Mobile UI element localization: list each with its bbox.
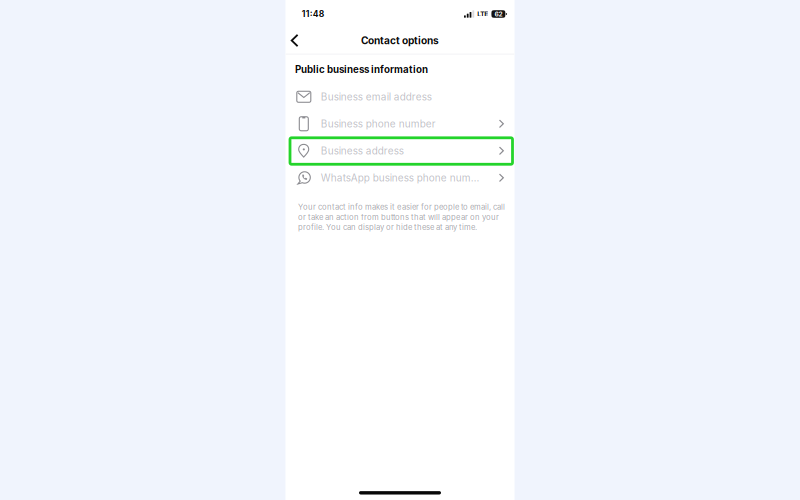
staticText: Public business information xyxy=(295,63,428,75)
staticText: 11:48 xyxy=(302,9,325,19)
staticText: 62 xyxy=(494,10,502,18)
button[interactable]: Business phone number xyxy=(285,110,514,137)
staticText: Business email address xyxy=(321,91,432,103)
button[interactable]: WhatsApp business phone num… xyxy=(285,164,514,191)
button[interactable]: Business email address xyxy=(285,83,514,110)
staticText: WhatsApp business phone num… xyxy=(321,172,480,184)
staticText: Your contact info makes it easier for pe… xyxy=(298,202,505,232)
button[interactable]: Back xyxy=(284,29,306,51)
button[interactable]: Business address xyxy=(285,137,514,164)
staticText: Contact options xyxy=(361,34,439,47)
staticText: LTE xyxy=(477,10,488,18)
staticText: Business address xyxy=(321,145,404,157)
staticText: Business phone number xyxy=(321,118,436,130)
